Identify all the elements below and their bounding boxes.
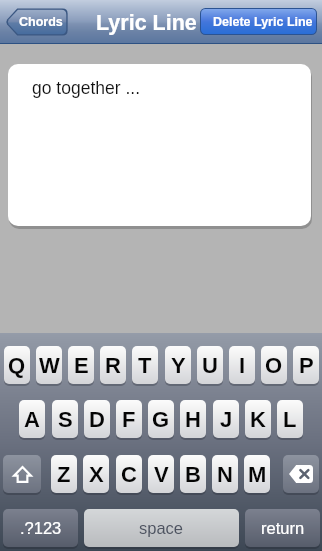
- staticText: W: [39, 353, 60, 378]
- staticText: space: [139, 519, 184, 537]
- button[interactable]: Z: [51, 455, 77, 493]
- button[interactable]: A: [19, 400, 45, 438]
- staticText: D: [89, 407, 105, 432]
- staticText: E: [74, 353, 89, 378]
- button[interactable]: R: [100, 346, 126, 384]
- staticText: Z: [57, 462, 71, 487]
- staticText: K: [250, 407, 266, 432]
- button[interactable]: H: [180, 400, 206, 438]
- button[interactable]: W: [36, 346, 62, 384]
- button[interactable]: return: [245, 509, 320, 547]
- button[interactable]: .?123: [3, 509, 78, 547]
- staticText: J: [220, 407, 233, 432]
- button[interactable]: Chords: [5, 8, 68, 36]
- staticText: N: [217, 462, 233, 487]
- button[interactable]: N: [212, 455, 238, 493]
- button[interactable]: F: [116, 400, 142, 438]
- button[interactable]: C: [116, 455, 142, 493]
- staticText: Delete Lyric Line: [213, 15, 313, 29]
- staticText: U: [202, 353, 218, 378]
- staticText: P: [299, 353, 314, 378]
- button[interactable]: G: [148, 400, 174, 438]
- staticText: V: [154, 462, 169, 487]
- button[interactable]: O: [261, 346, 287, 384]
- staticText: B: [185, 462, 201, 487]
- staticText: L: [283, 407, 297, 432]
- button[interactable]: Y: [165, 346, 191, 384]
- button[interactable]: T: [132, 346, 158, 384]
- staticText: I: [239, 353, 246, 378]
- staticText: T: [138, 353, 152, 378]
- staticText: X: [89, 462, 104, 487]
- staticText: Q: [8, 353, 26, 378]
- button[interactable]: M: [244, 455, 270, 493]
- staticText: S: [58, 407, 73, 432]
- button[interactable]: L: [277, 400, 303, 438]
- staticText: A: [24, 407, 40, 432]
- staticText: M: [248, 462, 267, 487]
- staticText: .?123: [20, 519, 62, 537]
- staticText: R: [105, 353, 121, 378]
- staticText: G: [152, 407, 170, 432]
- button[interactable]: V: [148, 455, 174, 493]
- button[interactable]: D: [84, 400, 110, 438]
- button[interactable]: P: [293, 346, 319, 384]
- button[interactable]: Shift: [3, 455, 41, 493]
- button[interactable]: Delete Lyric Line: [201, 9, 316, 34]
- button[interactable]: Q: [4, 346, 30, 384]
- button[interactable]: U: [197, 346, 223, 384]
- button[interactable]: I: [229, 346, 255, 384]
- button[interactable]: space: [84, 509, 239, 547]
- staticText: O: [265, 353, 283, 378]
- button[interactable]: E: [68, 346, 94, 384]
- staticText: Chords: [19, 15, 63, 29]
- staticText: return: [261, 519, 305, 537]
- staticText: F: [122, 407, 136, 432]
- staticText: Lyric Line: [96, 11, 197, 35]
- button[interactable]: go together ...: [8, 64, 311, 226]
- button[interactable]: Backspace: [283, 455, 319, 493]
- button[interactable]: B: [180, 455, 206, 493]
- button[interactable]: X: [83, 455, 109, 493]
- staticText: H: [185, 407, 201, 432]
- staticText: Y: [171, 353, 186, 378]
- staticText: go together ...: [32, 78, 140, 98]
- staticText: C: [121, 462, 137, 487]
- button[interactable]: S: [52, 400, 78, 438]
- button[interactable]: K: [245, 400, 271, 438]
- button[interactable]: J: [213, 400, 239, 438]
